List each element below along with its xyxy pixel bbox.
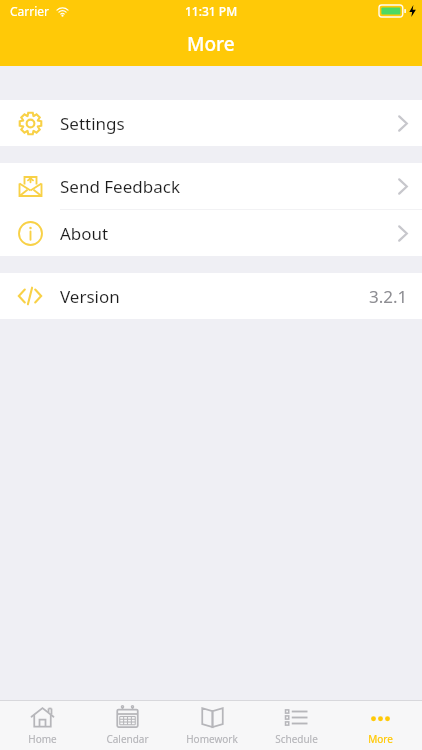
staticText: Home [28,732,57,746]
button[interactable]: Version [0,273,422,319]
button[interactable]: Homework [170,701,254,750]
staticText: About [60,222,109,245]
staticText: Settings [60,112,125,135]
staticText: Homework [186,732,238,746]
button[interactable]: More [338,701,422,750]
button[interactable]: Calendar [85,701,170,750]
staticText: 11:31 PM [185,3,238,19]
staticText: Send Feedback [60,175,180,198]
button[interactable]: Home [0,701,85,750]
staticText: More [368,732,393,746]
staticText: More [187,31,235,57]
button[interactable]: About [0,210,422,256]
staticText: 3.2.1 [369,285,408,308]
staticText: Schedule [275,732,318,746]
staticText: Version [60,285,120,308]
button[interactable]: Settings [0,100,422,146]
button[interactable]: Schedule [254,701,338,750]
button[interactable]: Send Feedback [0,163,422,209]
staticText: Calendar [106,732,149,746]
staticText: Carrier [10,3,50,19]
